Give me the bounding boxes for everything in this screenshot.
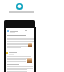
button[interactable]: Post image xyxy=(28,43,32,47)
button[interactable]: App logo xyxy=(16,3,23,10)
button[interactable]: Toolbar xyxy=(4,20,35,28)
button[interactable]: Author avatar xyxy=(7,30,9,32)
button[interactable]: Post image xyxy=(27,58,32,63)
button[interactable]: Author avatar xyxy=(6,52,8,54)
